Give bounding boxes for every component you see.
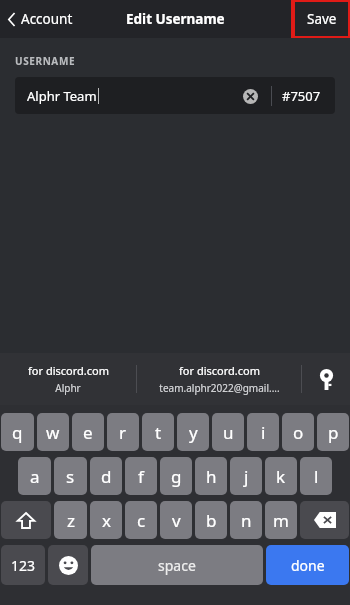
- staticText: m: [273, 509, 289, 532]
- staticText: i: [261, 421, 266, 444]
- button[interactable]: q: [1, 413, 34, 451]
- staticText: o: [293, 421, 304, 444]
- button[interactable]: x: [90, 501, 122, 539]
- staticText: for discord.com: [179, 363, 260, 378]
- staticText: z: [67, 509, 75, 532]
- button[interactable]: n: [230, 501, 262, 539]
- staticText: #7507: [282, 87, 321, 105]
- button[interactable]: i: [247, 413, 279, 451]
- staticText: Alphr Team: [27, 87, 97, 105]
- button[interactable]: Clear text: [237, 83, 263, 109]
- button[interactable]: z: [54, 501, 87, 539]
- button[interactable]: Emoji: [48, 545, 88, 585]
- staticText: d: [101, 465, 112, 488]
- staticText: p: [328, 421, 339, 444]
- staticText: space: [158, 556, 196, 575]
- button[interactable]: r: [107, 413, 139, 451]
- staticText: Edit Username: [126, 10, 225, 28]
- button[interactable]: o: [282, 413, 314, 451]
- staticText: c: [137, 509, 146, 532]
- button[interactable]: Password manager: [302, 353, 350, 405]
- button[interactable]: s: [54, 457, 87, 495]
- staticText: v: [172, 509, 181, 532]
- staticText: j: [244, 465, 249, 488]
- button[interactable]: space: [91, 545, 263, 585]
- staticText: h: [206, 465, 217, 488]
- button[interactable]: e: [72, 413, 104, 451]
- button[interactable]: l: [300, 457, 332, 495]
- staticText: 123: [11, 556, 36, 575]
- staticText: Alphr: [55, 381, 81, 395]
- staticText: Save: [307, 10, 337, 28]
- staticText: a: [30, 465, 40, 488]
- button[interactable]: Shift: [1, 501, 51, 539]
- staticText: e: [83, 421, 93, 444]
- staticText: q: [12, 421, 23, 444]
- staticText: w: [46, 421, 60, 444]
- button[interactable]: m: [265, 501, 297, 539]
- button[interactable]: Alphr Team: [15, 77, 335, 114]
- button[interactable]: 123: [1, 545, 45, 585]
- button[interactable]: j: [230, 457, 262, 495]
- button[interactable]: Backspace: [300, 501, 349, 539]
- button[interactable]: Account: [0, 4, 81, 34]
- staticText: USERNAME: [15, 54, 76, 68]
- staticText: r: [119, 421, 127, 444]
- button[interactable]: a: [18, 457, 51, 495]
- staticText: done: [291, 556, 325, 575]
- button[interactable]: for discord.com: [137, 363, 301, 395]
- button[interactable]: f: [125, 457, 157, 495]
- staticText: l: [314, 465, 319, 488]
- staticText: for discord.com: [28, 363, 109, 378]
- staticText: n: [241, 509, 252, 532]
- button[interactable]: g: [160, 457, 192, 495]
- staticText: y: [189, 421, 198, 444]
- staticText: Account: [21, 10, 73, 28]
- button[interactable]: p: [317, 413, 349, 451]
- button[interactable]: b: [195, 501, 227, 539]
- staticText: t: [155, 421, 162, 444]
- button[interactable]: h: [195, 457, 227, 495]
- button[interactable]: u: [212, 413, 244, 451]
- staticText: s: [66, 465, 75, 488]
- button[interactable]: w: [37, 413, 69, 451]
- button[interactable]: done: [266, 545, 349, 585]
- button[interactable]: d: [90, 457, 122, 495]
- button[interactable]: for discord.com: [0, 363, 136, 395]
- staticText: x: [102, 509, 111, 532]
- button[interactable]: k: [265, 457, 297, 495]
- staticText: g: [171, 465, 182, 488]
- button[interactable]: v: [160, 501, 192, 539]
- staticText: k: [276, 465, 286, 488]
- button[interactable]: c: [125, 501, 157, 539]
- button[interactable]: t: [142, 413, 174, 451]
- staticText: b: [206, 509, 217, 532]
- staticText: f: [138, 465, 144, 488]
- staticText: u: [223, 421, 234, 444]
- button[interactable]: Save: [293, 0, 350, 38]
- staticText: team.alphr2022@gmail....: [159, 381, 280, 395]
- button[interactable]: y: [177, 413, 209, 451]
